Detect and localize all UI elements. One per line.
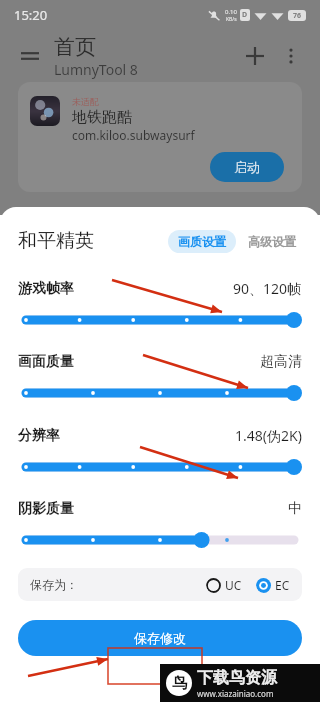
staticText: com.kiloo.subwaysurf [72,127,195,143]
staticText: EC [275,577,290,593]
button[interactable]: 画质设置 [168,230,236,253]
staticText: 分辨率 [18,427,60,445]
button[interactable] [18,459,302,475]
staticText: 画面质量 [18,353,74,371]
button[interactable] [18,385,302,401]
button[interactable]: UC [206,577,242,593]
staticText: KB/s [226,16,237,23]
staticText: www.xiazainiao.com [197,688,274,699]
staticText: 画质设置 [178,234,226,249]
staticText: 90、120帧 [233,279,302,298]
staticText: 保存为： [30,577,78,592]
staticText: 超高清 [260,353,302,371]
button[interactable]: Menu [12,38,48,74]
staticText: 保存修改 [134,630,186,646]
button[interactable]: 高级设置 [242,230,302,253]
button[interactable] [18,532,302,548]
staticText: 地铁跑酷 [72,108,132,127]
staticText: LumnyTool 8 [54,60,138,79]
staticText: 未适配 [72,96,99,107]
staticText: 启动 [234,159,260,175]
staticText: 首页 [54,34,96,60]
staticText: 0.10 [225,8,237,16]
staticText: 和平精英 [18,229,94,253]
button[interactable]: More options [274,39,308,73]
staticText: 下载鸟资源 [197,668,277,688]
staticText: 中 [288,500,302,518]
staticText: 鸟 [172,674,187,693]
staticText: 1.48(伪2K) [235,426,302,445]
staticText: 76 [293,11,302,21]
button[interactable] [18,312,302,328]
button[interactable]: EC [256,577,290,593]
button[interactable]: Add [236,37,274,75]
staticText: 15:20 [14,6,48,24]
button[interactable]: 启动 [210,152,284,182]
staticText: 高级设置 [248,234,296,249]
button[interactable]: 未适配 [18,82,302,192]
staticText: D [242,10,248,20]
staticText: UC [225,577,242,593]
staticText: 游戏帧率 [18,280,74,298]
button[interactable]: 保存修改 [18,620,302,656]
staticText: 阴影质量 [18,500,74,518]
